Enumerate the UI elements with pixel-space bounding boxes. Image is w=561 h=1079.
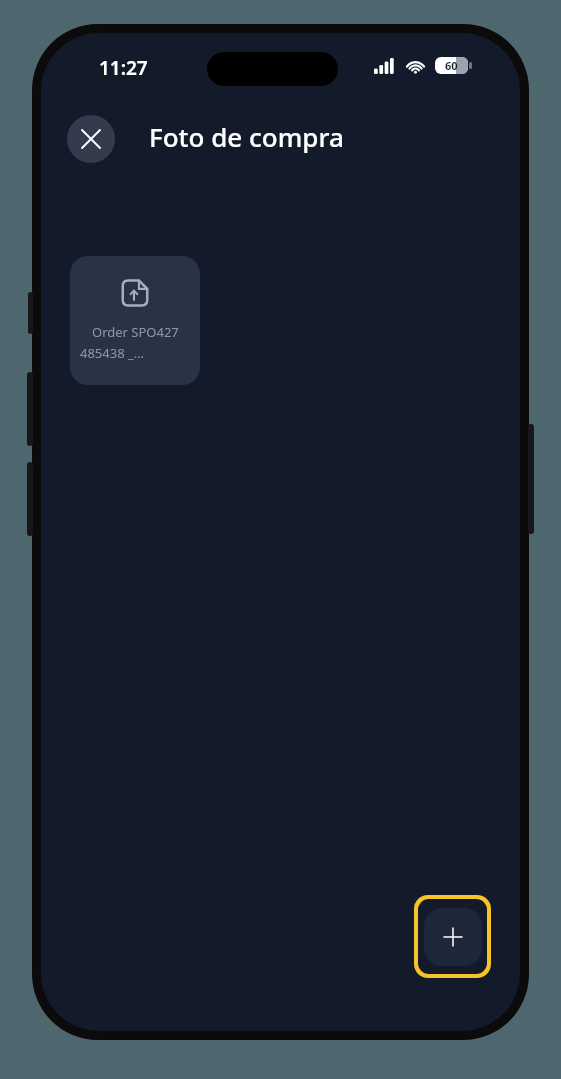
button[interactable]: Order SPO427 [70,256,200,385]
staticText: 485438 _… [80,344,145,362]
button[interactable]: Add photo [414,895,491,978]
staticText: 11:27 [99,55,148,81]
button[interactable]: Close [67,115,115,163]
staticText: 60 [445,58,458,73]
staticText: Foto de compra [149,119,344,154]
staticText: Order SPO427 [92,323,179,341]
